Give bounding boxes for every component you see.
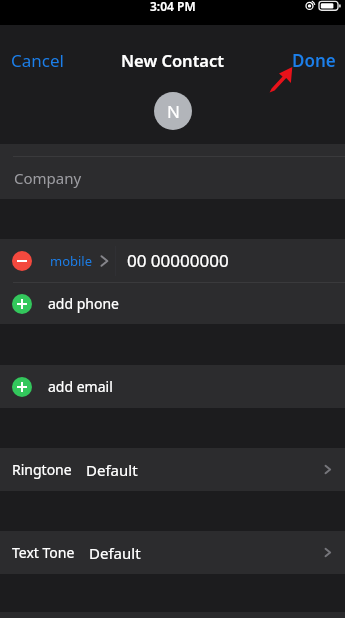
button[interactable]: Add email (0, 365, 345, 408)
button[interactable]: Done (278, 40, 345, 81)
button[interactable]: Cancel (0, 40, 78, 81)
staticText: Ringtone (12, 460, 72, 479)
staticText: New Contact (121, 49, 224, 71)
button[interactable]: Add phone (0, 283, 345, 324)
button[interactable]: Remove mobile number (0, 239, 345, 282)
other: Add email (12, 377, 32, 397)
button[interactable]: Ringtone (0, 448, 345, 491)
button[interactable]: Company (0, 157, 345, 199)
other: Add phone (12, 294, 32, 314)
staticText: Cancel (11, 49, 64, 72)
staticText: 00 00000000 (127, 249, 229, 272)
staticText: Text Tone (12, 543, 75, 562)
staticText: Default (89, 543, 141, 563)
staticText: 3:04 PM (150, 0, 196, 14)
button[interactable]: Add contact photo (154, 92, 192, 130)
staticText: mobile (50, 252, 93, 270)
staticText: Default (86, 460, 138, 480)
button[interactable]: Text Tone (0, 531, 345, 574)
staticText: N (167, 100, 180, 123)
staticText: add phone (48, 294, 119, 313)
staticText: Company (14, 168, 82, 188)
staticText: Done (292, 49, 336, 72)
staticText: add email (48, 377, 113, 396)
other: Remove mobile number (12, 251, 32, 271)
